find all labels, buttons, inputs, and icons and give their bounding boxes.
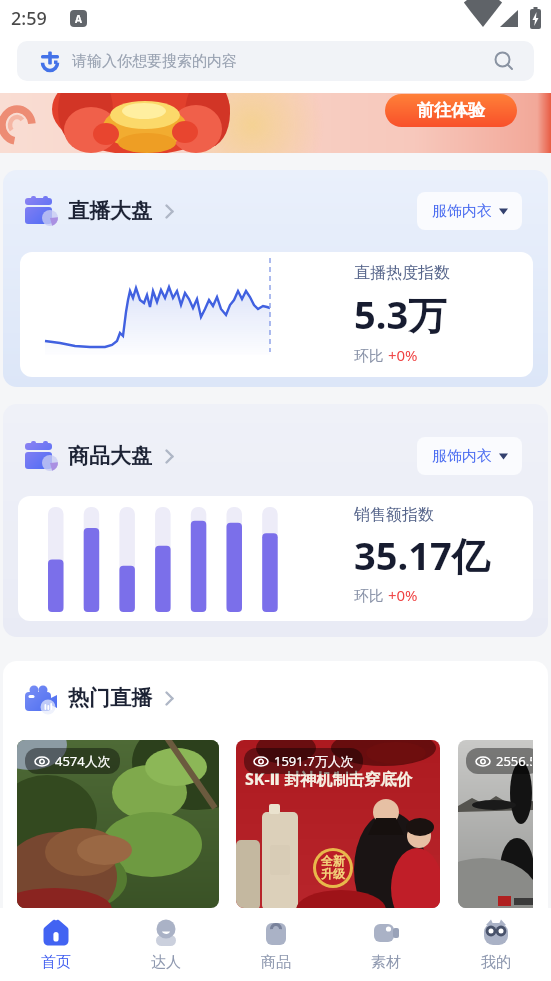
button[interactable]: 4574人次 (17, 740, 219, 908)
staticText: 热门直播 (68, 685, 152, 711)
staticText: 全新 升级 (321, 853, 345, 882)
button[interactable]: 素材 (331, 908, 441, 981)
button[interactable]: 前往体验 (385, 94, 517, 127)
button[interactable]: 请输入你想要搜索的内容 (17, 41, 534, 81)
staticText: 直播热度指数 (354, 263, 450, 283)
button[interactable]: 2556.5万 (458, 740, 533, 908)
staticText: 服饰内衣 (432, 447, 492, 466)
staticText: 前往体验 (417, 100, 485, 121)
button[interactable]: 我的 (441, 908, 551, 981)
staticText: 商品 (261, 953, 291, 972)
button[interactable]: 服饰内衣 (417, 437, 522, 475)
staticText: 环比 +0% (354, 345, 418, 365)
button[interactable]: SK-Ⅱ 封神机制击穿底价 (236, 740, 440, 908)
staticText: 达人 (151, 953, 181, 972)
staticText: 商品大盘 (68, 443, 152, 469)
staticText: 我的 (481, 953, 511, 972)
button[interactable]: 商品 (221, 908, 331, 981)
staticText: SK-Ⅱ 封神机制击穿底价 (245, 768, 413, 790)
staticText: 2556.5万 (496, 752, 532, 770)
staticText: A (75, 12, 82, 26)
staticText: 环比 +0% (354, 585, 418, 605)
staticText: 销售额指数 (354, 505, 434, 525)
staticText: 直播大盘 (68, 198, 152, 224)
staticText: 首页 (41, 953, 71, 972)
staticText: 4574人次 (55, 752, 111, 770)
staticText: 请输入你想要搜索的内容 (72, 52, 237, 71)
button[interactable]: 服饰内衣 (417, 192, 522, 230)
button[interactable]: 首页 (0, 908, 111, 981)
staticText: 5.3万 (354, 288, 447, 340)
staticText: 2:59 (11, 6, 47, 31)
staticText: 1591.7万人次 (274, 752, 354, 770)
button[interactable]: 热门直播 (25, 682, 174, 714)
staticText: 35.17亿 (354, 529, 490, 581)
button[interactable]: 达人 (111, 908, 221, 981)
staticText: 服饰内衣 (432, 202, 492, 221)
staticText: 素材 (371, 953, 401, 972)
